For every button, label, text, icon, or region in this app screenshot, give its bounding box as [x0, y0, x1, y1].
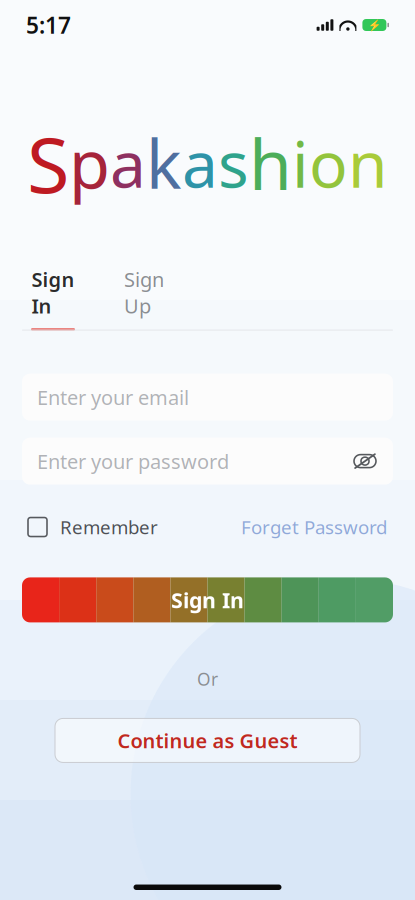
- staticText: Remember: [60, 515, 158, 539]
- button[interactable]: Enter your email: [22, 374, 393, 421]
- staticText: Continue as Guest: [117, 727, 297, 754]
- staticText: Forget Password: [241, 515, 387, 539]
- button[interactable]: Continue as Guest: [55, 718, 360, 762]
- staticText: Enter your email: [37, 384, 189, 410]
- staticText: Or: [197, 667, 218, 690]
- staticText: h: [249, 116, 292, 210]
- staticText: S: [27, 110, 69, 216]
- staticText: Sign In: [31, 266, 74, 319]
- staticText: p: [69, 118, 110, 208]
- button[interactable]: Enter your password: [22, 438, 393, 485]
- staticText: 5:17: [26, 10, 71, 40]
- button[interactable]: Remember: [28, 515, 158, 539]
- staticText: i: [292, 119, 309, 207]
- button[interactable]: Forget Password: [241, 515, 387, 539]
- button[interactable]: Sign In: [22, 266, 84, 331]
- staticText: a: [182, 119, 218, 207]
- staticText: Sign In: [171, 586, 244, 614]
- button[interactable]: Sign Up: [112, 266, 176, 331]
- staticText: o: [309, 119, 348, 207]
- staticText: n: [348, 119, 388, 207]
- staticText: Sign Up: [124, 266, 164, 319]
- staticText: s: [218, 119, 249, 207]
- staticText: Enter your password: [37, 448, 229, 474]
- staticText: k: [146, 118, 182, 208]
- staticText: ⚡: [368, 19, 381, 31]
- staticText: a: [110, 119, 146, 207]
- button[interactable]: Sign In: [22, 577, 393, 622]
